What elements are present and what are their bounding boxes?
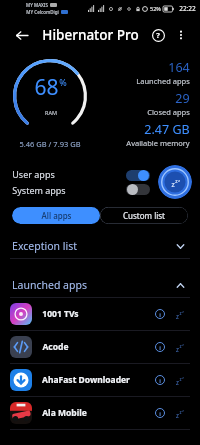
staticText: 2.47 GB [144,121,190,138]
staticText: z [176,312,179,320]
button[interactable]: Hibernate apps [158,165,192,199]
button[interactable]: App info [152,306,168,322]
button[interactable]: Hibernate Ala Mobile [172,405,188,421]
staticText: z [179,343,182,349]
staticText: 164 [168,59,190,76]
staticText: z [176,411,179,419]
staticText: RAM [45,109,57,116]
staticText: z [179,310,182,316]
staticText: MY CelcomDigi [26,9,59,15]
staticText: z [178,178,180,183]
staticText: 29 [175,90,190,107]
button[interactable]: App info [152,405,168,421]
staticText: i [159,344,161,351]
staticText: MY MAXIS [26,2,48,8]
button[interactable] [126,184,150,195]
button[interactable]: Acode [0,331,200,363]
staticText: i [159,377,161,384]
button[interactable]: Custom list [100,207,188,224]
staticText: Hibernator Pro [42,26,139,44]
staticText: z [175,178,178,185]
staticText: Ala Mobile [42,407,87,419]
staticText: z [182,343,184,347]
staticText: 22:22 [179,4,196,13]
staticText: 5.46 GB / 7.93 GB [19,139,81,149]
staticText: Available memory [126,138,190,148]
staticText: Closed apps [147,107,190,117]
button[interactable]: Hibernate Acode [172,339,188,355]
staticText: z [179,376,182,382]
staticText: System apps [12,184,66,196]
button[interactable]: App info [152,372,168,388]
staticText: AhaFast Downloader [42,374,130,386]
staticText: 1001 TVs [42,308,79,320]
staticText: i [159,311,161,318]
button[interactable]: Hibernate AhaFast Downloader [172,372,188,388]
button[interactable]: Help [146,23,170,47]
staticText: i [159,410,161,417]
button[interactable]: Ala Mobile [0,397,200,429]
button[interactable]: AhaFast Downloader [0,364,200,396]
staticText: z [182,376,184,380]
button[interactable]: Exception list [0,234,200,258]
staticText: Launched apps [12,278,87,292]
staticText: Custom list [123,210,165,221]
staticText: z [179,409,182,415]
staticText: Launched apps [136,76,190,86]
button[interactable]: 1001 TVs [0,298,200,330]
button[interactable] [126,170,150,181]
staticText: Acode [42,341,69,353]
staticText: z [182,310,184,314]
staticText: z [176,378,179,386]
staticText: All apps [41,210,72,221]
staticText: ? [156,30,160,40]
button[interactable]: All apps [12,207,100,224]
staticText: 52% [150,5,161,12]
staticText: z [171,180,175,189]
button[interactable]: Launched apps [0,273,200,297]
button[interactable]: App info [152,339,168,355]
staticText: z [176,345,179,353]
button[interactable]: More options [170,24,192,46]
staticText: z [182,409,184,413]
button[interactable]: Back [8,22,34,48]
button[interactable]: Hibernate 1001 TVs [172,306,188,322]
staticText: 68 [34,73,59,102]
staticText: User apps [12,168,55,180]
staticText: % [59,76,67,88]
staticText: Exception list [12,239,77,253]
